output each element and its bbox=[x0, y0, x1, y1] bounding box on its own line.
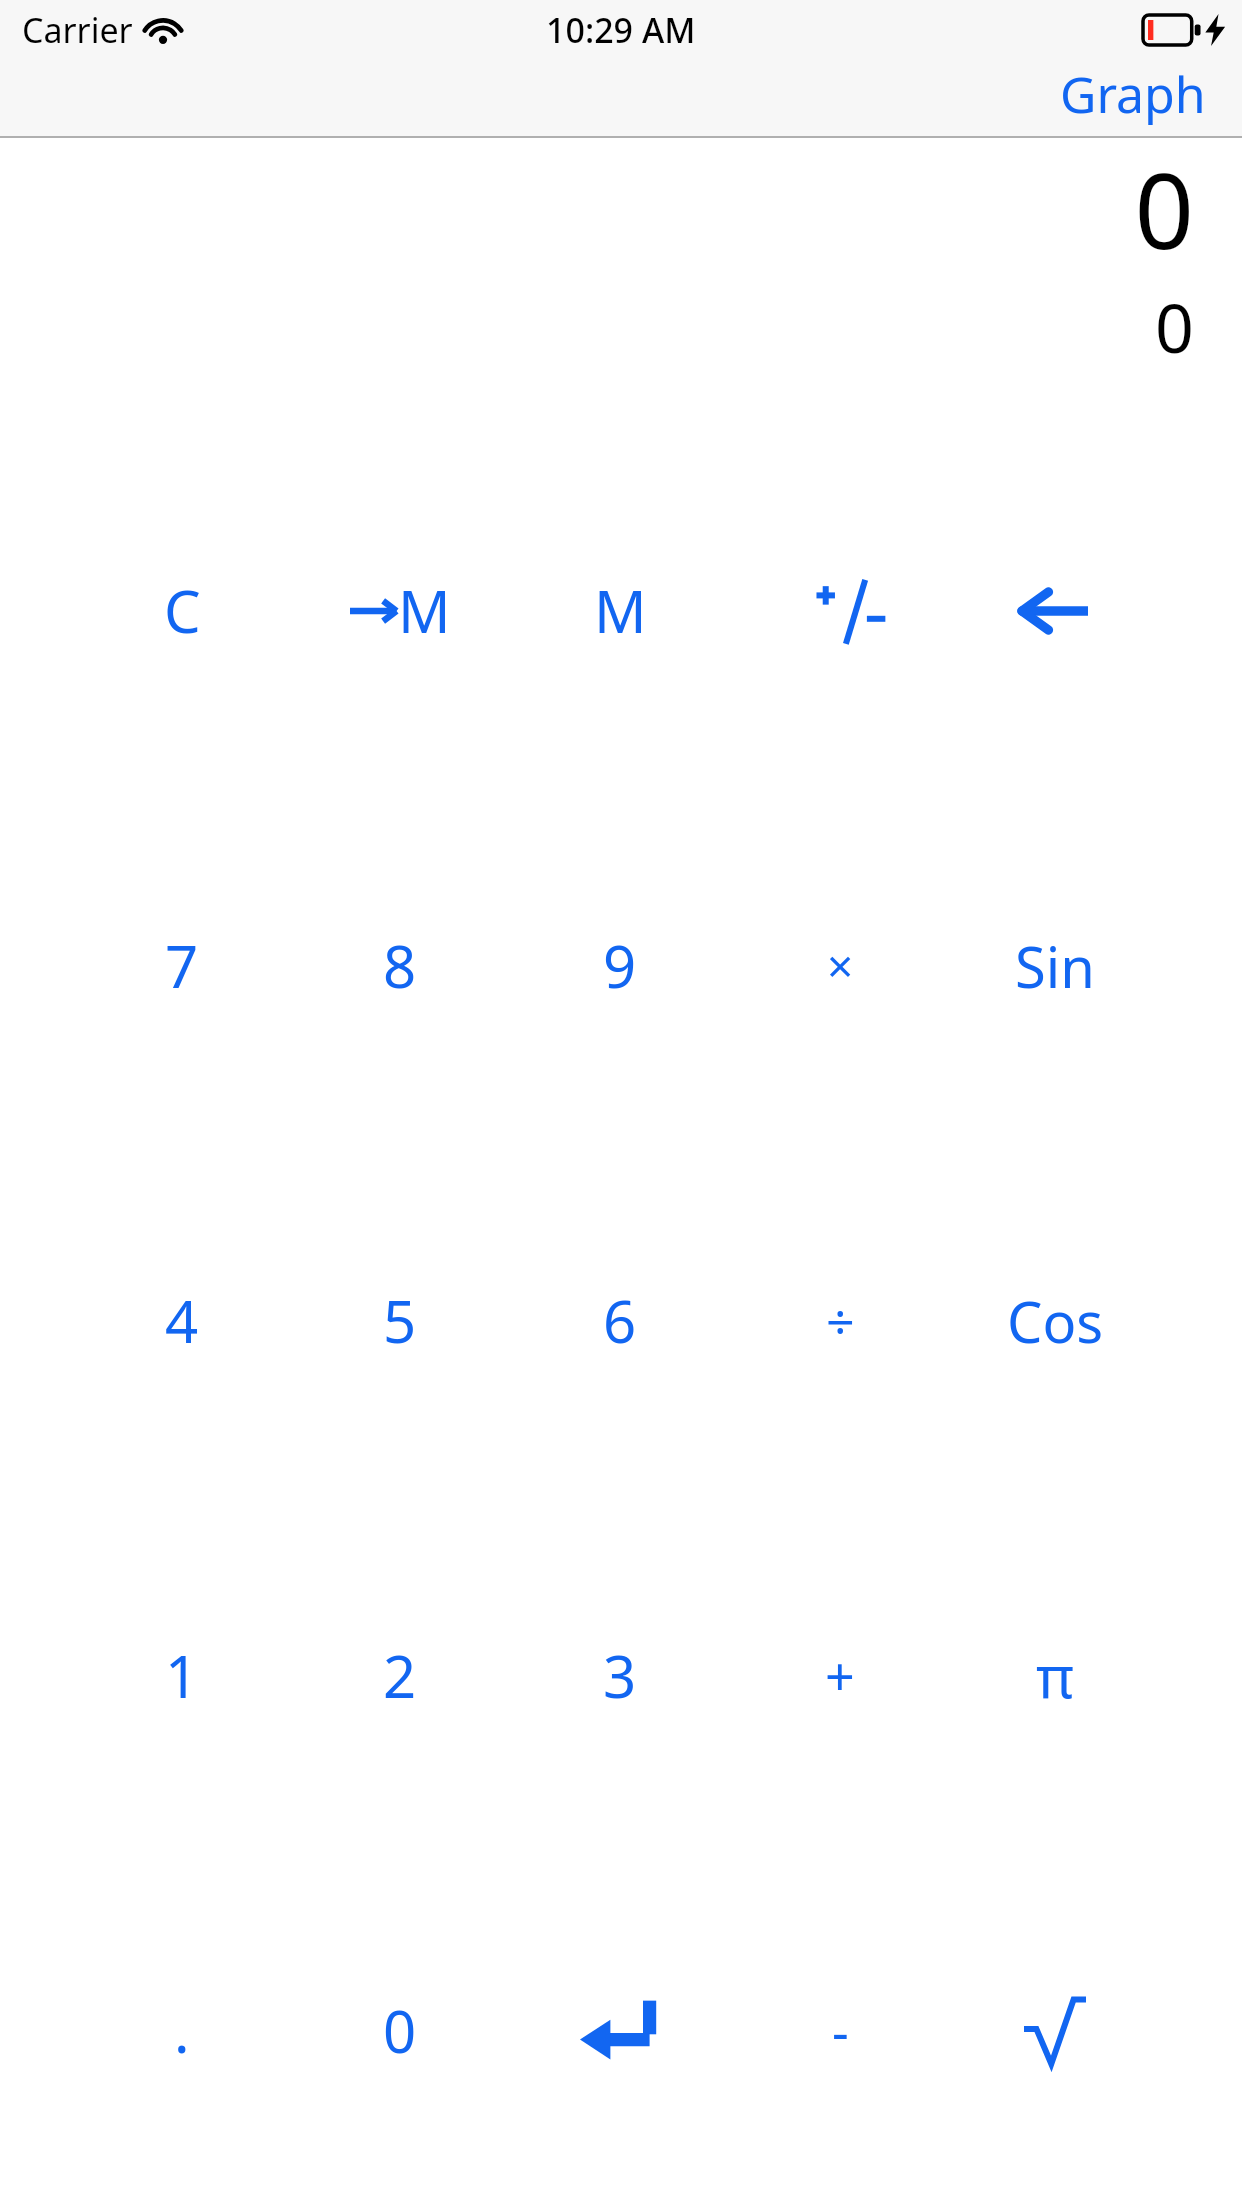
staticText: 6 bbox=[603, 1281, 637, 1360]
staticText: - bbox=[832, 1995, 849, 2066]
staticText: 0 bbox=[1155, 280, 1194, 373]
button[interactable]: 0 bbox=[276, 1853, 524, 2208]
button[interactable]: Sin bbox=[931, 788, 1179, 1143]
button[interactable]: . bbox=[58, 1853, 306, 2208]
button[interactable]: 2 bbox=[276, 1498, 524, 1853]
button[interactable]: Square root bbox=[931, 1853, 1179, 2208]
button[interactable]: - bbox=[716, 1853, 964, 2208]
staticText: Graph bbox=[1060, 60, 1206, 128]
button[interactable]: Graph bbox=[1046, 56, 1220, 132]
button[interactable]: 8 bbox=[276, 788, 524, 1143]
staticText: × bbox=[827, 934, 854, 997]
staticText: π bbox=[1036, 1636, 1074, 1715]
button[interactable]: 1 bbox=[58, 1498, 306, 1853]
button[interactable]: 4 bbox=[58, 1143, 306, 1498]
button[interactable]: × bbox=[716, 788, 964, 1143]
button[interactable]: 6 bbox=[496, 1143, 744, 1498]
staticText: 8 bbox=[383, 926, 417, 1005]
button[interactable]: Store to memory bbox=[276, 433, 524, 788]
staticText: C bbox=[164, 571, 201, 650]
staticText: 9 bbox=[603, 926, 637, 1005]
button[interactable]: Cos bbox=[931, 1143, 1179, 1498]
button[interactable]: ÷ bbox=[716, 1143, 964, 1498]
staticText: 5 bbox=[383, 1281, 417, 1360]
staticText: Cos bbox=[1007, 1283, 1104, 1359]
button[interactable]: C bbox=[58, 433, 306, 788]
button[interactable]: π bbox=[931, 1498, 1179, 1853]
staticText: M bbox=[594, 571, 647, 650]
staticText: 0 bbox=[383, 1991, 417, 2070]
button[interactable]: 7 bbox=[58, 788, 306, 1143]
button[interactable]: 9 bbox=[496, 788, 744, 1143]
button[interactable]: Backspace bbox=[931, 433, 1179, 788]
staticText: 7 bbox=[165, 926, 199, 1005]
staticText: ÷ bbox=[826, 1287, 855, 1355]
staticText: 4 bbox=[165, 1281, 199, 1360]
staticText: 2 bbox=[383, 1636, 417, 1715]
button[interactable]: 5 bbox=[276, 1143, 524, 1498]
staticText: + bbox=[825, 1640, 855, 1711]
button[interactable]: 3 bbox=[496, 1498, 744, 1853]
staticText: 3 bbox=[603, 1636, 637, 1715]
button[interactable]: Enter bbox=[496, 1853, 744, 2208]
button[interactable]: M bbox=[496, 433, 744, 788]
staticText: 0 bbox=[1134, 138, 1194, 280]
staticText: 1 bbox=[165, 1636, 199, 1715]
staticText: . bbox=[174, 1991, 190, 2070]
staticText: Sin bbox=[1015, 928, 1095, 1004]
staticText: Carrier bbox=[22, 7, 133, 53]
staticText: 10:29 AM bbox=[546, 7, 696, 53]
staticText: M bbox=[398, 571, 451, 650]
button[interactable]: + bbox=[716, 1498, 964, 1853]
button[interactable]: Toggle sign bbox=[716, 433, 964, 788]
